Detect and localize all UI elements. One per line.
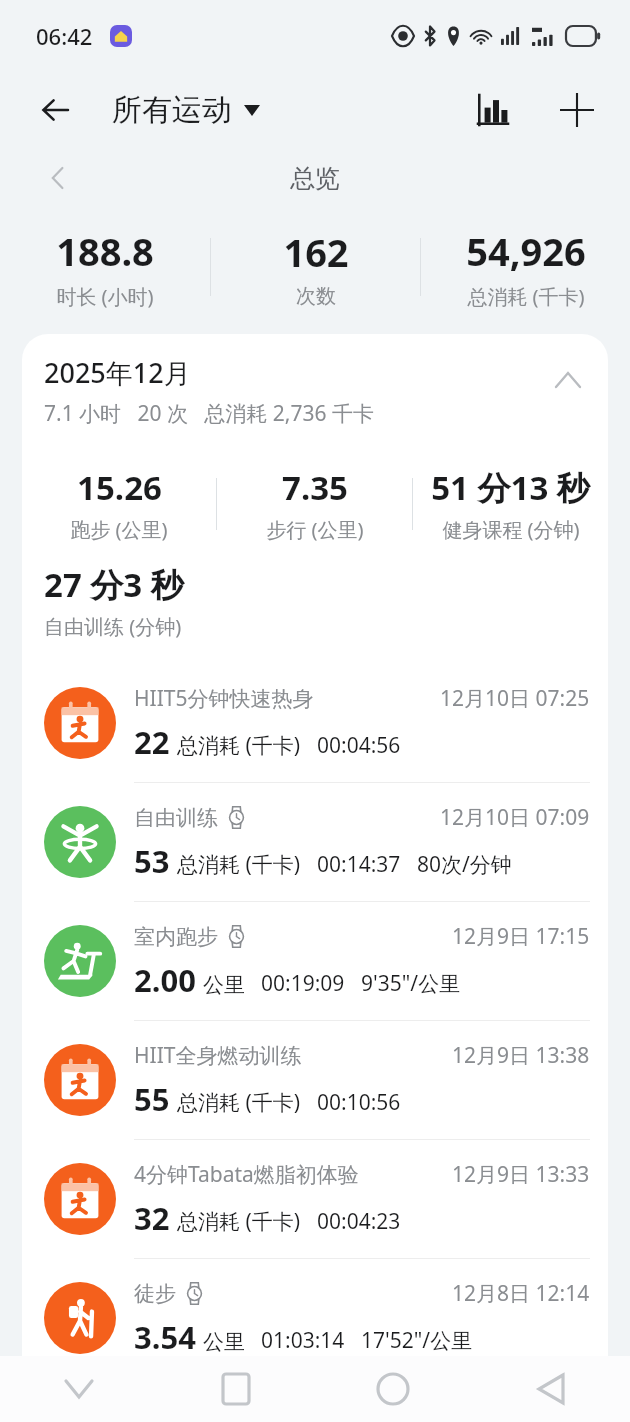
button[interactable]: Collapse: [542, 354, 594, 406]
staticText: 80次/分钟: [417, 850, 512, 879]
staticText: 4分钟Tabata燃脂初体验: [134, 1160, 359, 1189]
button[interactable]: Previous: [34, 154, 82, 202]
staticText: 总消耗 (千卡): [177, 850, 301, 879]
staticText: 公里: [203, 972, 245, 998]
staticText: 22: [134, 721, 170, 763]
staticText: 室内跑步: [134, 924, 218, 950]
button[interactable]: 徒步: [22, 1259, 608, 1377]
staticText: 总消耗 (千卡): [177, 1207, 301, 1236]
button[interactable]: Recents: [157, 1356, 314, 1422]
button[interactable]: 4分钟Tabata燃脂初体验: [22, 1140, 608, 1258]
staticText: 7.35: [282, 465, 348, 510]
staticText: 9'35"/公里: [361, 969, 461, 998]
button[interactable]: Hide keyboard: [0, 1356, 157, 1422]
staticText: 健身课程 (分钟): [442, 516, 580, 543]
staticText: 12月9日 17:15: [452, 922, 590, 951]
staticText: 12月9日 13:33: [452, 1160, 590, 1189]
staticText: 53: [134, 840, 170, 882]
staticText: 总消耗 (千卡): [177, 1088, 301, 1117]
button[interactable]: Statistics: [464, 81, 522, 139]
staticText: 徒步: [134, 1281, 176, 1307]
staticText: 54,926: [466, 225, 586, 277]
staticText: 步行 (公里): [266, 516, 364, 543]
staticText: 总览: [290, 163, 340, 194]
staticText: 12月9日 13:38: [452, 1041, 590, 1070]
staticText: 跑步 (公里): [70, 516, 168, 543]
staticText: 总消耗 (千卡): [467, 283, 585, 310]
staticText: 公里: [203, 1329, 245, 1355]
staticText: 2.00: [134, 959, 196, 1001]
button[interactable]: Back: [472, 1356, 630, 1422]
staticText: 01:03:14: [261, 1326, 345, 1355]
button[interactable]: HIIT全身燃动训练: [22, 1021, 608, 1139]
staticText: 00:04:23: [317, 1207, 401, 1236]
button[interactable]: 室内跑步: [22, 902, 608, 1020]
staticText: 自由训练: [134, 805, 218, 831]
button[interactable]: Home: [314, 1356, 472, 1422]
button[interactable]: Back: [28, 82, 84, 138]
staticText: 7.1 小时 20 次 总消耗 2,736 千卡: [44, 399, 374, 428]
staticText: 162: [283, 226, 349, 278]
staticText: 00:14:37: [317, 850, 401, 879]
staticText: 次数: [296, 284, 336, 309]
staticText: HIIT5分钟快速热身: [134, 684, 314, 713]
button[interactable]: HIIT5分钟快速热身: [22, 664, 608, 782]
staticText: 188.8: [56, 225, 154, 277]
button[interactable]: 所有运动: [112, 91, 260, 129]
staticText: 自由训练 (分钟): [44, 613, 182, 640]
staticText: 55: [134, 1078, 170, 1120]
staticText: 所有运动: [112, 91, 232, 129]
staticText: 时长 (小时): [56, 283, 154, 310]
staticText: HIIT全身燃动训练: [134, 1041, 302, 1070]
button[interactable]: Add: [548, 81, 606, 139]
button[interactable]: 自由训练: [22, 783, 608, 901]
staticText: 17'52"/公里: [361, 1326, 473, 1355]
staticText: 00:04:56: [317, 731, 401, 760]
staticText: 12月10日 07:09: [440, 803, 590, 832]
staticText: 27 分3 秒: [44, 562, 184, 607]
staticText: 12月10日 07:25: [440, 684, 590, 713]
staticText: 3.54: [134, 1316, 196, 1358]
staticText: 00:19:09: [261, 969, 345, 998]
staticText: 12月8日 12:14: [452, 1279, 590, 1308]
staticText: 51 分13 秒: [431, 465, 590, 510]
staticText: 2025年12月: [44, 354, 191, 391]
staticText: 总消耗 (千卡): [177, 731, 301, 760]
staticText: 06:42: [36, 21, 93, 51]
staticText: 15.26: [77, 465, 162, 510]
staticText: 32: [134, 1197, 170, 1239]
staticText: 00:10:56: [317, 1088, 401, 1117]
